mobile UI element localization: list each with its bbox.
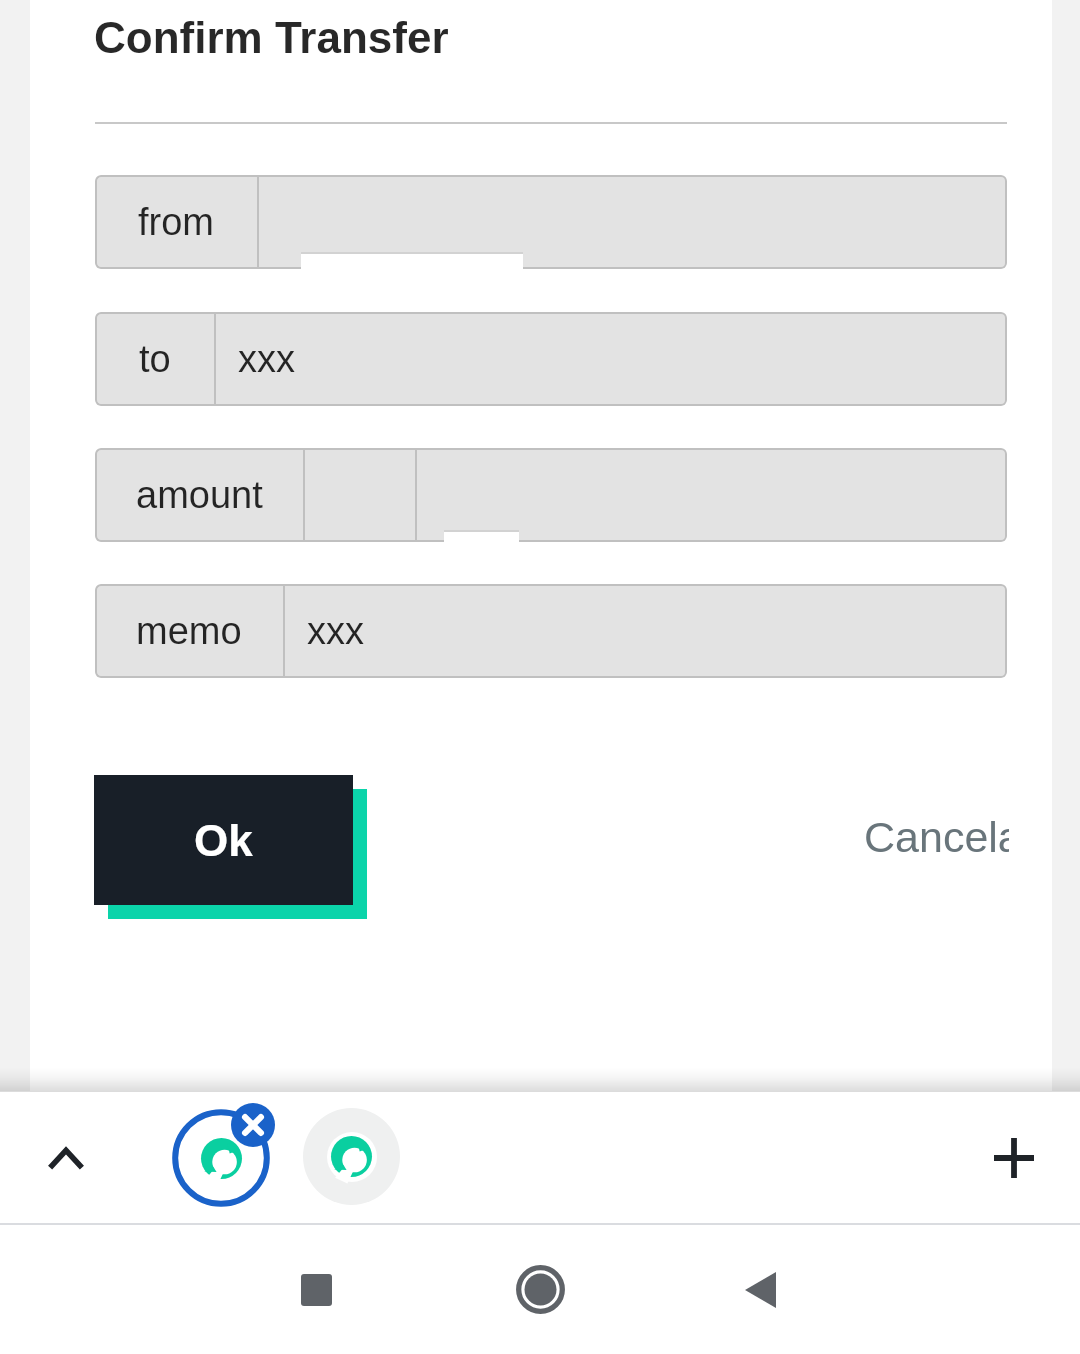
button[interactable]: Close tab: [231, 1103, 275, 1147]
button[interactable]: Cancelar: [864, 802, 1009, 872]
staticText: amount: [136, 474, 263, 516]
button[interactable]: Home: [500, 1249, 580, 1329]
staticText: from: [138, 201, 214, 243]
staticText: Ok: [194, 816, 253, 865]
button[interactable]: Back: [720, 1250, 800, 1330]
button[interactable]: Expand toolbar: [30, 1122, 102, 1194]
staticText: to: [139, 338, 171, 380]
button[interactable]: Current tab: [157, 1094, 285, 1222]
button[interactable]: Ok: [94, 775, 353, 905]
staticText: Confirm Transfer: [94, 13, 449, 62]
button[interactable]: New tab: [978, 1122, 1050, 1194]
button[interactable]: Recents: [276, 1250, 356, 1330]
staticText: Cancelar: [864, 813, 1009, 861]
staticText: memo: [136, 610, 242, 652]
staticText: xxx: [238, 338, 295, 380]
button[interactable]: Other tab: [303, 1108, 400, 1205]
staticText: xxx: [307, 610, 364, 652]
